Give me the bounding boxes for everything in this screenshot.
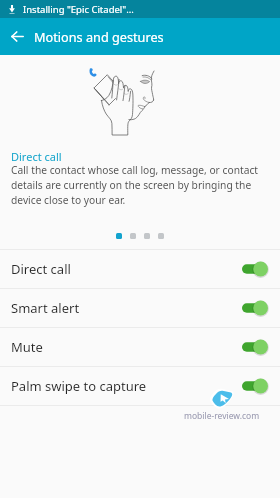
button[interactable]: Direct call	[0, 250, 280, 288]
staticText: Motions and gestures	[34, 28, 164, 45]
staticText: Direct call	[11, 149, 62, 164]
button[interactable]: Smart alert	[0, 289, 280, 327]
button[interactable]: Back	[0, 18, 34, 55]
staticText: Mute	[11, 338, 43, 356]
staticText: Installing "Epic Citadel"...	[23, 3, 134, 16]
staticText: mobile-review.com	[184, 410, 260, 422]
staticText: Smart alert	[11, 299, 80, 317]
staticText: Call the contact whose call log, message…	[11, 163, 269, 207]
staticText: Direct call	[11, 260, 71, 278]
button[interactable]: Palm swipe to capture	[0, 367, 280, 405]
staticText: Palm swipe to capture	[11, 377, 147, 395]
button[interactable]: Mute	[0, 328, 280, 366]
